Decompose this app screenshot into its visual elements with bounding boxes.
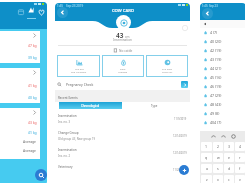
button[interactable]: 3 [224, 142, 234, 151]
staticText: 1:45 Sep 23 [202, 4, 218, 8]
staticText: 275 Days [162, 67, 173, 70]
button[interactable]: q [201, 153, 212, 162]
staticText: 41 kg [28, 83, 37, 88]
staticText: 42 (19) [210, 48, 222, 53]
button[interactable]: 41 kg [0, 68, 40, 103]
staticText: Recent Events [58, 96, 78, 100]
button[interactable]: Change Group [55, 128, 190, 145]
button[interactable]: 1 [201, 142, 212, 151]
staticText: 47 kg [28, 43, 37, 48]
button[interactable]: Go [181, 81, 188, 88]
staticText: 39 kg [28, 55, 37, 60]
staticText: Pregnancy Check [66, 82, 94, 87]
button[interactable]: Back [57, 7, 68, 18]
button[interactable]: v [235, 175, 245, 183]
staticText: 4 (7) [210, 30, 218, 35]
button[interactable]: 43 kg [0, 108, 40, 159]
staticText: 43 kg [28, 120, 37, 125]
staticText: Average [118, 70, 128, 73]
staticText: 425 846 [75, 67, 84, 70]
staticText: 2 [217, 144, 220, 149]
button[interactable]: Chronological [59, 102, 122, 109]
button[interactable]: Insemination [55, 111, 190, 128]
button[interactable]: 40 (20) [200, 37, 245, 46]
button[interactable]: Calendar [16, 7, 26, 17]
button[interactable]: 42 (19) [200, 46, 245, 55]
button[interactable]: a [201, 164, 212, 173]
staticText: Chronological [81, 104, 100, 108]
staticText: 44 (21) [210, 66, 222, 71]
staticText: x [217, 177, 219, 182]
staticText: 11/9/2019 [174, 117, 187, 121]
staticText: Insemination [58, 114, 77, 118]
button[interactable]: Favorites [36, 7, 46, 17]
staticText: Old group 43, New group 19 [58, 137, 96, 141]
staticText: 43 [116, 31, 124, 40]
button[interactable]: Search [35, 169, 47, 181]
button[interactable]: 4 (7) [200, 28, 245, 37]
staticText: z [206, 177, 208, 182]
staticText: Average [23, 139, 37, 144]
staticText: 1:45 Sep 23 2019 [57, 4, 84, 8]
button[interactable]: 49 (8) [200, 109, 245, 118]
staticText: 12/14/2019 [173, 151, 187, 155]
staticText: 46 (19) [210, 84, 222, 89]
staticText: Ins. no. 2 [58, 154, 70, 158]
button[interactable]: Back [202, 8, 213, 19]
staticText: 43 (19) [210, 57, 222, 62]
staticText: 47 (29) [210, 93, 222, 98]
button[interactable]: 275 Days [146, 55, 188, 77]
staticText: 40 kg [28, 95, 37, 100]
staticText: q [205, 155, 208, 160]
button[interactable]: Add event [179, 165, 189, 175]
staticText: cm [125, 35, 130, 39]
button[interactable]: e [224, 153, 234, 162]
button[interactable]: 47 (29) [200, 91, 245, 100]
button[interactable]: c [224, 175, 234, 183]
button[interactable]: 425 846 [57, 55, 100, 77]
button[interactable]: 2 [213, 142, 223, 151]
staticText: 12/14/2019 [173, 134, 187, 138]
staticText: a [206, 166, 208, 171]
button[interactable]: d [224, 164, 234, 173]
staticText: Change Group [58, 131, 79, 135]
button[interactable]: 48 (43) [200, 100, 245, 109]
staticText: No cattle [119, 49, 133, 53]
button[interactable]: Insemination [55, 145, 190, 162]
staticText: c [228, 177, 230, 182]
staticText: w [217, 155, 220, 160]
button[interactable]: 47 kg [0, 31, 40, 63]
button[interactable]: Daily [102, 55, 144, 77]
staticText: 40 (20) [210, 39, 222, 44]
button[interactable]: 46 (19) [200, 82, 245, 91]
button[interactable]: Type [122, 102, 186, 109]
staticText: 2nd Lactation [71, 70, 87, 73]
staticText: Ins. no. 3 [58, 120, 70, 124]
staticText: 49 (8) [210, 111, 220, 116]
staticText: Insemination [55, 38, 190, 42]
button[interactable]: 44 (21) [200, 64, 245, 73]
button[interactable]: 45 (16) [200, 73, 245, 82]
staticText: v [239, 177, 241, 182]
button[interactable]: 4 [235, 142, 245, 151]
button[interactable]: r [235, 153, 245, 162]
staticText: Insemination [58, 148, 77, 152]
staticText: 45 (16) [210, 75, 222, 80]
button[interactable]: s [213, 164, 223, 173]
button[interactable]: Veterinary [55, 162, 190, 179]
staticText: f [239, 166, 241, 171]
staticText: 48 (43) [210, 102, 222, 107]
staticText: d [228, 166, 231, 171]
button[interactable]: 404 (7) [200, 118, 245, 127]
button[interactable]: x [213, 175, 223, 183]
staticText: e [228, 155, 230, 160]
button[interactable]: 43 (19) [200, 55, 245, 64]
button[interactable]: f [235, 164, 245, 173]
staticText: 11/26/2019 [173, 168, 187, 172]
button[interactable]: w [213, 153, 223, 162]
button[interactable]: z [201, 175, 212, 183]
staticText: s [217, 166, 219, 171]
staticText: Daily [120, 67, 126, 70]
button[interactable]: Statistics [26, 5, 36, 19]
staticText: Veterinary [58, 165, 73, 169]
